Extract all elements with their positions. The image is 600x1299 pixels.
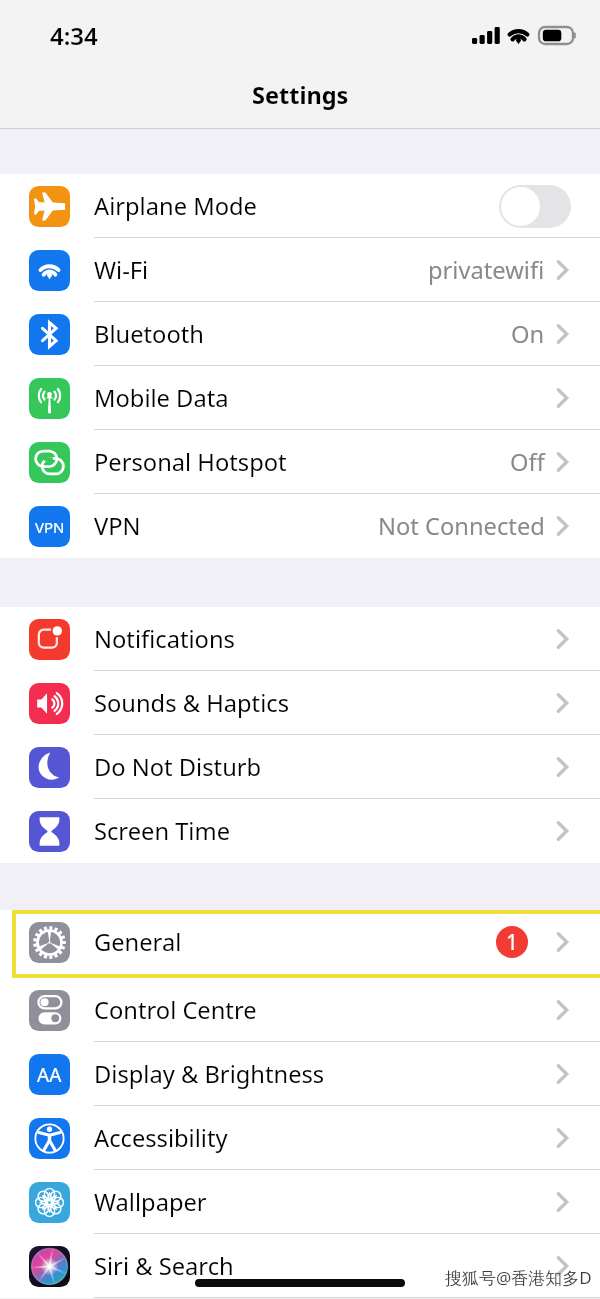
button[interactable]: Bluetooth — [0, 302, 600, 366]
staticText: Notifications — [94, 623, 235, 655]
staticText: Personal Hotspot — [94, 446, 287, 478]
button[interactable]: Wallpaper — [0, 1170, 600, 1234]
staticText: 搜狐号@香港知多D — [445, 1266, 592, 1289]
staticText: Display & Brightness — [94, 1058, 325, 1090]
button[interactable]: Sounds & Haptics — [0, 671, 600, 735]
staticText: Screen Time — [94, 815, 230, 847]
staticText: Bluetooth — [94, 318, 204, 350]
staticText: VPN — [94, 510, 141, 542]
staticText: Mobile Data — [94, 382, 229, 414]
button[interactable]: Siri & Search — [0, 1234, 600, 1298]
staticText: Not Connected — [378, 510, 545, 542]
staticText: 4:34 — [50, 19, 98, 52]
staticText: Siri & Search — [94, 1250, 234, 1282]
staticText: privatewifi — [428, 254, 545, 286]
staticText: On — [511, 318, 545, 350]
staticText: Do Not Disturb — [94, 751, 262, 783]
staticText: VPN — [35, 517, 65, 537]
staticText: Control Centre — [94, 994, 257, 1026]
button[interactable]: General — [0, 910, 600, 974]
staticText: Settings — [252, 79, 349, 111]
button[interactable]: AA — [0, 1042, 600, 1106]
staticText: AA — [37, 1062, 62, 1088]
staticText: Airplane Mode — [94, 190, 257, 222]
button[interactable]: Airplane Mode — [0, 174, 600, 238]
button[interactable]: Notifications — [0, 607, 600, 671]
staticText: Off — [510, 446, 545, 478]
staticText: General — [94, 926, 182, 958]
staticText: 1 — [506, 928, 519, 957]
button[interactable]: Do Not Disturb — [0, 735, 600, 799]
button[interactable]: VPN — [0, 494, 600, 558]
button[interactable]: Wi-Fi — [0, 238, 600, 302]
staticText: Sounds & Haptics — [94, 687, 289, 719]
staticText: Wallpaper — [94, 1186, 207, 1218]
staticText: Wi-Fi — [94, 254, 149, 286]
staticText: Accessibility — [94, 1122, 228, 1154]
button[interactable]: Personal Hotspot — [0, 430, 600, 494]
button[interactable]: Mobile Data — [0, 366, 600, 430]
button[interactable]: Screen Time — [0, 799, 600, 863]
button[interactable]: Control Centre — [0, 978, 600, 1042]
button[interactable]: Airplane Mode toggle — [499, 185, 571, 228]
button[interactable]: Accessibility — [0, 1106, 600, 1170]
